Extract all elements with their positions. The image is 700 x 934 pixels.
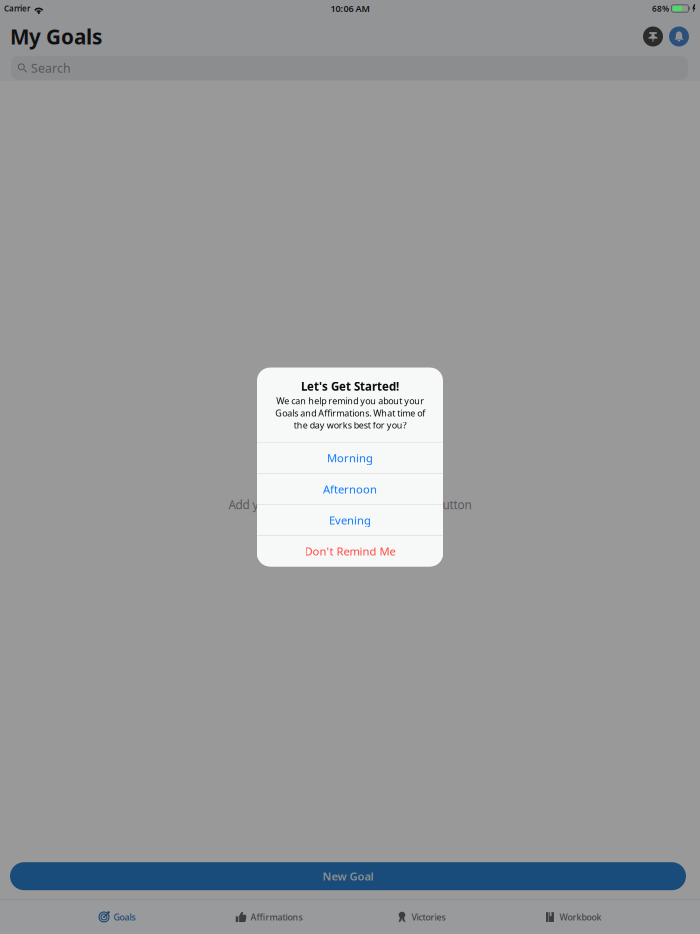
button[interactable]: Pinned goals — [643, 26, 663, 46]
button[interactable]: New Goal — [10, 862, 686, 890]
staticText: We can help remind you about your Goals … — [275, 395, 425, 431]
staticText: Let's Get Started! — [301, 379, 399, 394]
staticText: Victories — [411, 911, 445, 923]
button[interactable]: Morning — [257, 443, 443, 473]
staticText: Afternoon — [323, 481, 377, 497]
button[interactable]: Afternoon — [257, 474, 443, 504]
staticText: Goals — [113, 911, 135, 923]
staticText: Add your first goal with the New Goal bu… — [228, 497, 471, 513]
staticText: Evening — [329, 512, 371, 528]
staticText: Don't Remind Me — [304, 544, 395, 559]
button[interactable]: Victories — [345, 901, 497, 933]
staticText: 68% — [652, 3, 669, 14]
button[interactable]: Don't Remind Me — [257, 536, 443, 566]
staticText: New Goal — [322, 869, 373, 884]
button[interactable]: Search — [11, 56, 688, 80]
staticText: My Goals — [10, 22, 102, 50]
button[interactable]: Goals — [41, 901, 193, 933]
staticText: Workbook — [559, 911, 601, 923]
button[interactable]: Notifications — [669, 26, 689, 46]
staticText: Affirmations — [250, 911, 302, 923]
button[interactable]: Evening — [257, 505, 443, 535]
staticText: Carrier — [4, 3, 30, 14]
button[interactable]: Affirmations — [193, 901, 345, 933]
staticText: Morning — [327, 450, 373, 466]
staticText: 10:06 AM — [330, 2, 369, 15]
button[interactable]: Workbook — [497, 901, 649, 933]
staticText: Search — [31, 60, 71, 76]
